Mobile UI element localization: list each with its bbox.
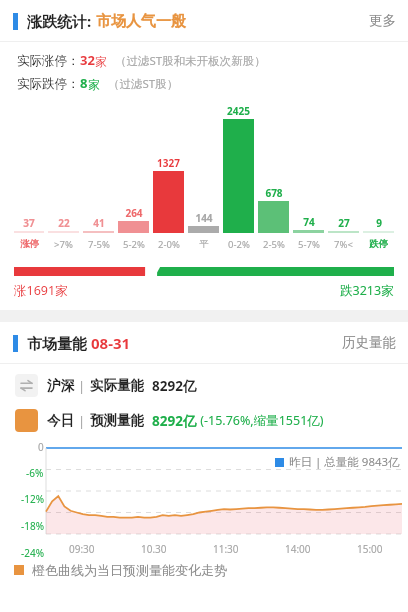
staticText: 08-31: [91, 333, 131, 353]
staticText: 家: [95, 54, 107, 69]
staticText: |: [78, 412, 86, 430]
staticText: -12%: [21, 492, 44, 504]
staticText: 7%<: [334, 238, 353, 251]
staticText: 09:30: [69, 542, 95, 556]
button[interactable]: Exchange: [15, 374, 408, 397]
staticText: 14:00: [285, 542, 311, 556]
staticText: 264: [125, 206, 143, 220]
staticText: (-15.76%,缩量1551亿): [197, 412, 324, 429]
staticText: -24%: [21, 546, 44, 558]
staticText: 11:30: [213, 542, 239, 556]
staticText: 2-0%: [158, 238, 180, 251]
staticText: 平: [199, 238, 209, 250]
staticText: 跌3213家: [340, 282, 394, 299]
button[interactable]: 今日: [15, 409, 408, 432]
staticText: 更多: [369, 12, 396, 29]
staticText: -18%: [21, 519, 44, 531]
staticText: 8292亿: [152, 377, 197, 395]
button[interactable]: 历史量能: [342, 334, 396, 351]
staticText: 15:00: [357, 542, 383, 556]
staticText: >7%: [54, 238, 73, 251]
staticText: -6%: [26, 466, 44, 478]
staticText: 2-5%: [263, 238, 285, 251]
staticText: 678: [265, 186, 283, 200]
staticText: （过滤ST股和未开板次新股）: [115, 53, 266, 69]
staticText: 8292亿: [152, 412, 197, 430]
staticText: 144: [195, 211, 213, 225]
staticText: 8: [80, 74, 88, 92]
staticText: |: [78, 377, 86, 395]
staticText: 5-2%: [123, 238, 145, 251]
staticText: 涨1691家: [14, 282, 68, 299]
staticText: （过滤ST股）: [108, 76, 179, 92]
staticText: 10.30: [141, 542, 167, 556]
staticText: 市场量能: [27, 333, 91, 353]
staticText: 32: [80, 51, 95, 69]
staticText: 橙色曲线为当日预测量能变化走势: [32, 562, 227, 578]
staticText: 74: [303, 215, 315, 229]
staticText: 昨日 | 总量能 9843亿: [289, 454, 400, 470]
staticText: 实际跌停：: [17, 76, 80, 92]
staticText: 涨停: [20, 238, 39, 250]
staticText: 0: [38, 440, 44, 452]
staticText: 0-2%: [228, 238, 250, 251]
staticText: 历史量能: [342, 334, 396, 351]
staticText: 5-7%: [298, 238, 320, 251]
staticText: 9: [376, 216, 382, 230]
staticText: 41: [93, 216, 105, 230]
button[interactable]: 市场量能: [13, 333, 131, 353]
staticText: 实际涨停：: [17, 53, 80, 69]
staticText: 27: [338, 216, 350, 230]
staticText: 7-5%: [88, 238, 110, 251]
staticText: 实际量能: [90, 377, 144, 394]
other: Exchange: [15, 374, 38, 397]
staticText: 市场人气一般: [96, 12, 186, 31]
staticText: 家: [88, 77, 100, 92]
staticText: 22: [58, 216, 70, 230]
button[interactable]: 更多: [369, 12, 396, 29]
staticText: 跌停: [369, 238, 388, 250]
staticText: 涨跌统计:: [27, 11, 96, 31]
staticText: 预测量能: [90, 412, 144, 429]
staticText: 37: [23, 216, 35, 230]
staticText: 今日: [47, 412, 74, 429]
staticText: 2425: [227, 104, 250, 118]
staticText: 沪深: [47, 377, 74, 394]
button[interactable]: 涨跌统计:: [13, 11, 186, 31]
staticText: 1327: [157, 156, 180, 170]
